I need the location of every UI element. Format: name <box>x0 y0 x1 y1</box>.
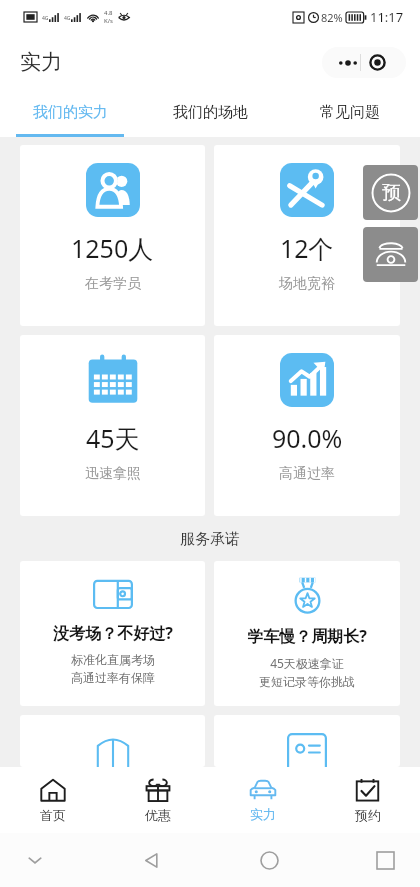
staticText: 12个 <box>280 231 334 265</box>
staticText: K/s <box>104 17 113 25</box>
staticText: 高通过率 <box>279 465 335 483</box>
staticText: 优惠 <box>145 807 171 823</box>
other: Hide keyboard <box>26 851 44 869</box>
button[interactable] <box>214 715 400 767</box>
button[interactable]: 90.0% <box>214 335 400 516</box>
staticText: 4G <box>64 15 71 22</box>
button[interactable]: 优惠 <box>105 767 210 833</box>
staticText: 常见问题 <box>320 103 380 122</box>
staticText: 实力 <box>250 806 276 822</box>
staticText: 4.8 <box>104 9 113 17</box>
other: Back <box>142 851 161 870</box>
staticText: 90.0% <box>272 421 343 455</box>
staticText: 4G <box>42 15 49 22</box>
staticText: 迅速拿照 <box>85 465 141 483</box>
button[interactable]: 我们的实力 <box>0 90 140 134</box>
staticText: 45天极速拿证 <box>270 655 344 671</box>
button[interactable]: 12个 <box>214 145 400 326</box>
button[interactable]: Call phone <box>363 227 418 282</box>
staticText: 1250人 <box>71 231 154 265</box>
button[interactable]: 预约 Booking <box>363 165 418 220</box>
staticText: 82% <box>321 10 343 25</box>
staticText: 学车慢？周期长? <box>247 625 367 647</box>
staticText: 我们的场地 <box>173 103 248 122</box>
staticText: 标准化直属考场 <box>71 652 155 667</box>
staticText: 在考学员 <box>85 275 141 293</box>
staticText: 预 <box>382 181 401 205</box>
staticText: 高通过率有保障 <box>71 670 155 685</box>
button[interactable]: Mini program menu <box>322 47 406 78</box>
button[interactable]: 45天 <box>20 335 205 516</box>
button[interactable]: 1250人 <box>20 145 205 326</box>
button[interactable]: 没考场？不好过? <box>20 561 205 706</box>
staticText: 更短记录等你挑战 <box>259 674 355 689</box>
button[interactable]: 预约 <box>315 767 420 833</box>
staticText: 没考场？不好过? <box>53 622 173 644</box>
staticText: 场地宽裕 <box>279 275 335 293</box>
other: Recents <box>377 852 394 869</box>
button[interactable]: 学车慢？周期长? <box>214 561 400 706</box>
other: Home <box>260 851 279 870</box>
button[interactable]: 首页 <box>0 767 105 833</box>
staticText: 预约 <box>355 807 381 823</box>
staticText: 实力 <box>20 49 62 75</box>
button[interactable]: 实力 <box>210 767 315 833</box>
staticText: 我们的实力 <box>33 103 108 122</box>
button[interactable] <box>20 715 205 767</box>
staticText: 服务承诺 <box>180 530 240 549</box>
staticText: 11:17 <box>370 8 404 26</box>
staticText: 45天 <box>86 421 140 455</box>
staticText: 首页 <box>40 807 66 823</box>
button[interactable]: 常见问题 <box>280 90 420 134</box>
button[interactable]: 我们的场地 <box>140 90 280 134</box>
